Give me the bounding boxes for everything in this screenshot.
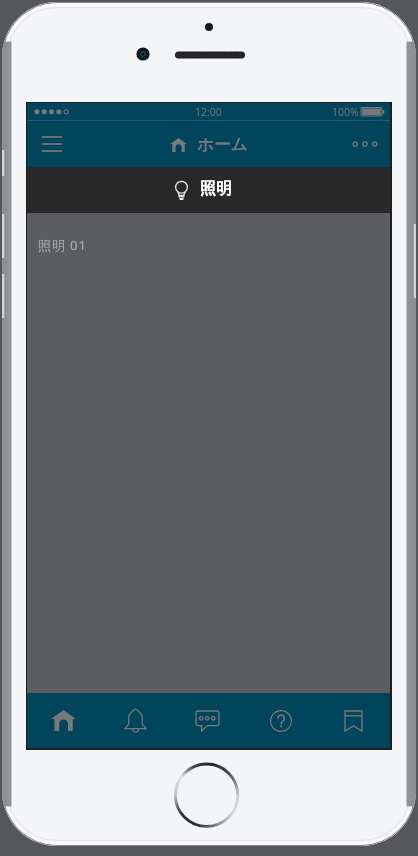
button[interactable]: More options	[346, 125, 384, 163]
staticText: 12:00	[195, 105, 222, 119]
button[interactable]: Home	[27, 693, 99, 748]
button[interactable]: 照明	[175, 180, 232, 200]
staticText: 照明	[200, 179, 232, 199]
button[interactable]: Notifications	[99, 693, 171, 748]
staticText: ホーム	[197, 134, 248, 155]
button[interactable]: Messages	[171, 693, 244, 748]
staticText: 100%	[332, 105, 359, 119]
button[interactable]: Help	[244, 693, 317, 748]
button[interactable]: 照明 01	[38, 236, 87, 254]
button[interactable]: ホーム	[170, 134, 248, 155]
button[interactable]: Bookmarks	[317, 693, 390, 748]
button[interactable]: Menu	[36, 128, 68, 160]
